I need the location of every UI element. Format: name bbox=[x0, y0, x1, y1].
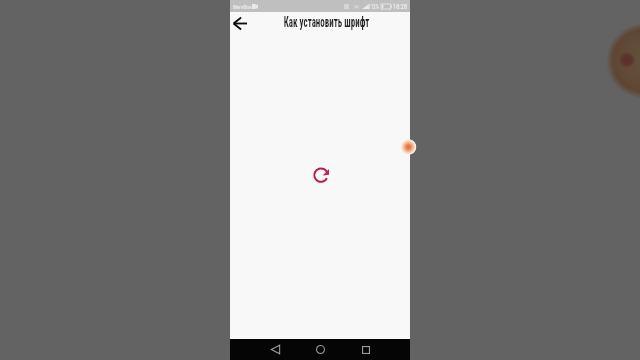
button[interactable]: Home bbox=[310, 339, 331, 360]
staticText: 12% bbox=[371, 3, 379, 10]
button[interactable]: Back bbox=[230, 12, 252, 34]
button[interactable]: Recent apps bbox=[355, 339, 376, 360]
button[interactable]: Back bbox=[265, 339, 286, 360]
staticText: 10:28 bbox=[393, 2, 407, 10]
staticText: Как установить шрифт bbox=[284, 14, 369, 30]
staticText: МегаФон bbox=[233, 4, 252, 9]
